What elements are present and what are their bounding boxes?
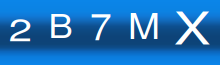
staticText: B bbox=[49, 0, 71, 47]
staticText: 7 bbox=[90, 0, 111, 51]
staticText: X bbox=[177, 0, 207, 57]
staticText: M bbox=[129, 0, 159, 49]
staticText: 2 bbox=[11, 5, 29, 50]
